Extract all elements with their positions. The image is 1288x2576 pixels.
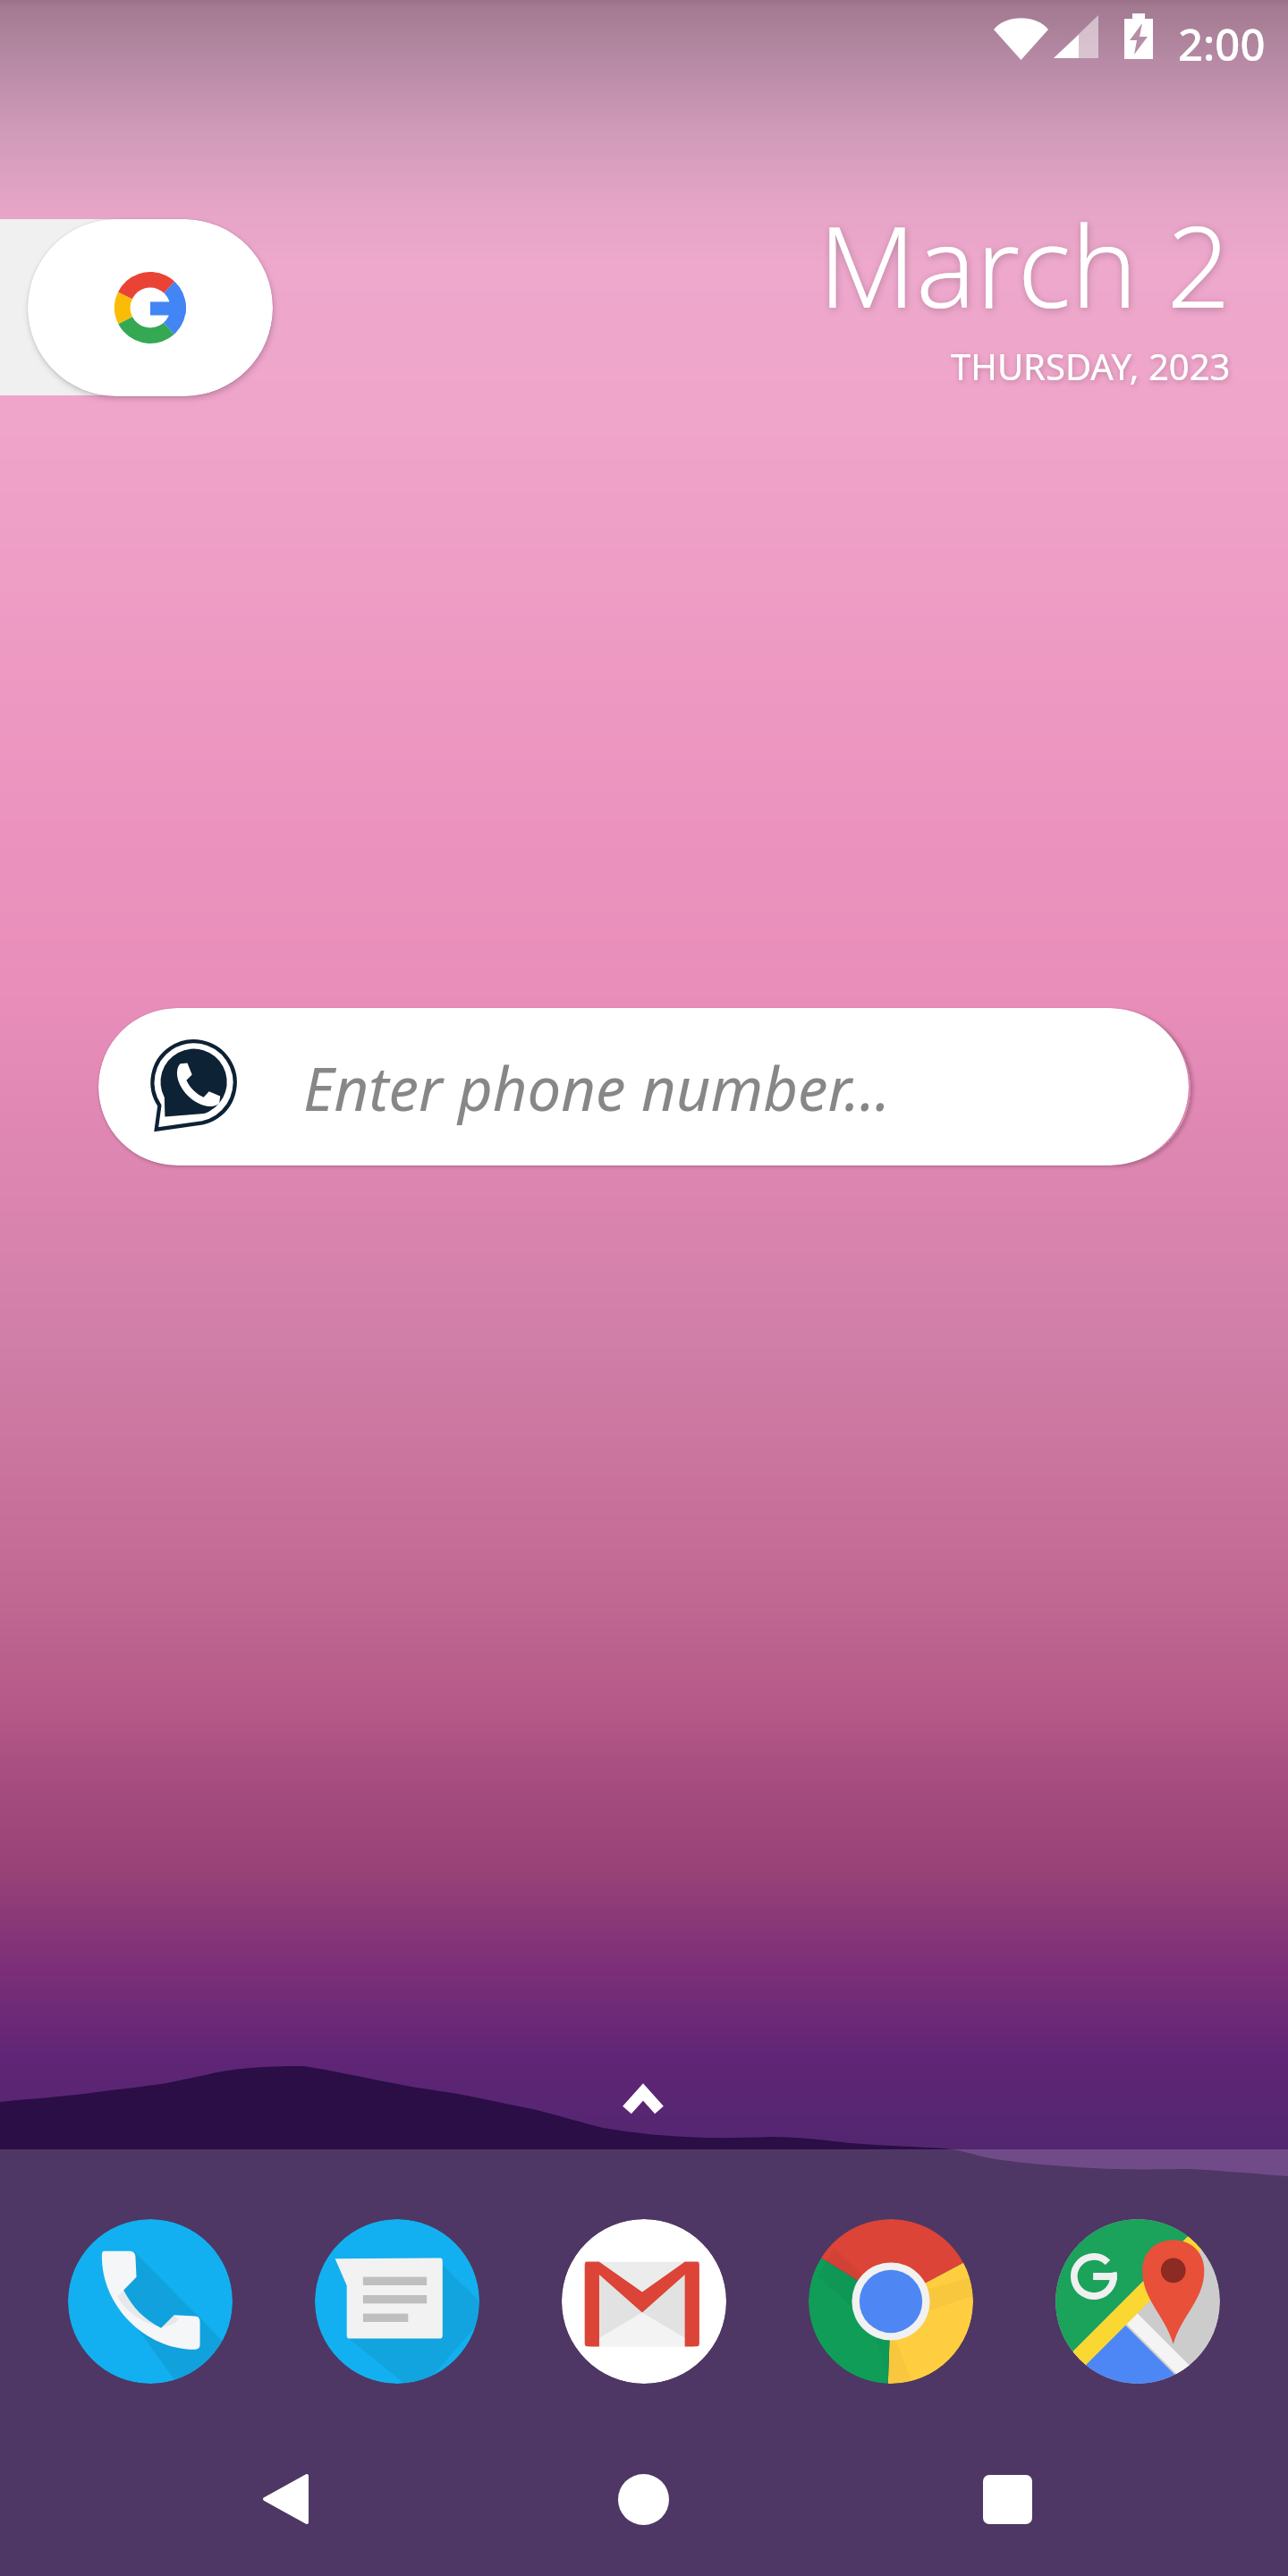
button[interactable]: Open app drawer [589, 2046, 697, 2153]
button[interactable]: Messages [315, 2219, 479, 2384]
button[interactable]: Enter phone number [98, 1008, 1189, 1165]
button[interactable]: Google search [28, 219, 273, 396]
button[interactable]: Maps [1055, 2219, 1220, 2384]
button[interactable]: Phone [68, 2219, 233, 2384]
button[interactable]: Date [0, 188, 1231, 390]
button[interactable]: Home [554, 2410, 733, 2576]
button[interactable]: Gmail [562, 2219, 726, 2384]
button[interactable]: Back [195, 2410, 374, 2576]
staticText: Enter phone number... [303, 1046, 891, 1128]
button[interactable]: Chrome [809, 2219, 973, 2384]
staticText: 2:00 [1178, 14, 1266, 74]
button[interactable]: Recent apps [918, 2410, 1097, 2576]
staticText: THURSDAY, 2023 [951, 342, 1231, 390]
staticText: March 2 [818, 188, 1231, 340]
